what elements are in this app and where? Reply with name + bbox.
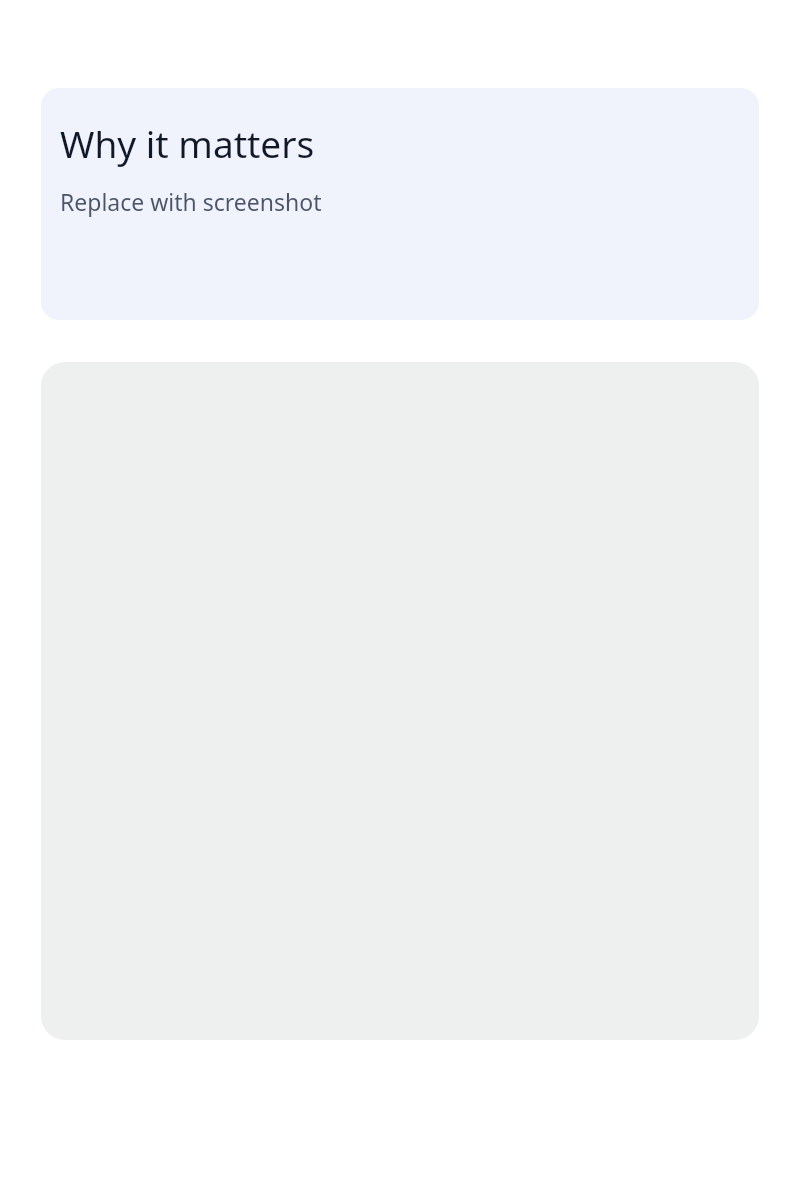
button[interactable]: Why it matters [41,88,759,320]
staticText: Why it matters [60,118,315,168]
staticText: Replace with screenshot [60,186,322,217]
